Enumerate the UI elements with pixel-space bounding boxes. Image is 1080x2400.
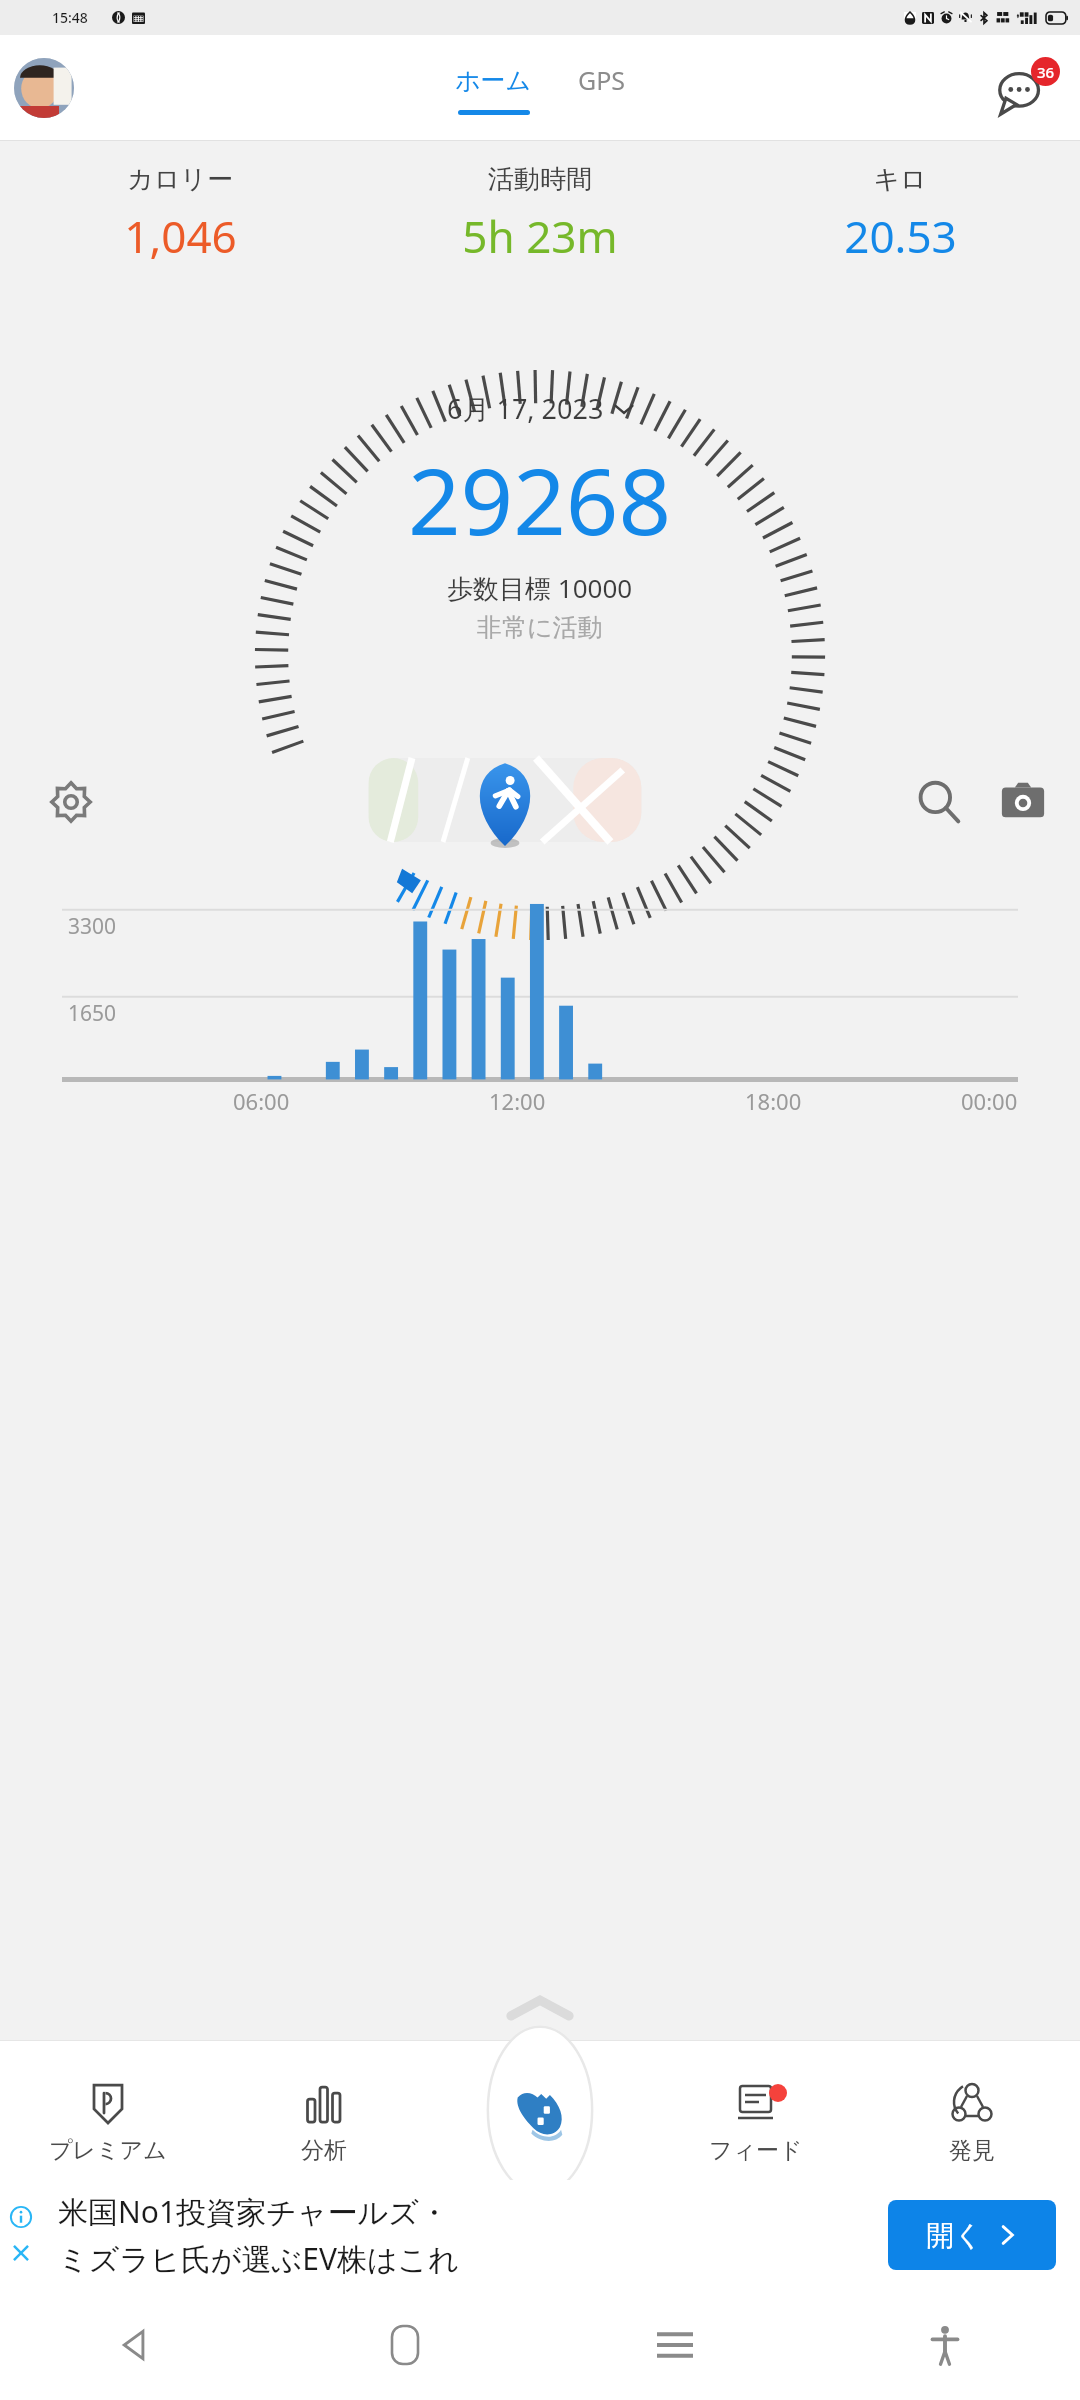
staticText: 29268 — [408, 437, 672, 562]
button[interactable]: 開く — [888, 2200, 1056, 2270]
button[interactable]: Search — [910, 773, 968, 831]
button[interactable]: 6月 17, 2023 — [447, 390, 634, 427]
staticText: 非常に活動 — [477, 612, 603, 643]
button[interactable]: 発見 — [864, 2056, 1080, 2165]
staticText: 5h 23m — [462, 206, 618, 266]
staticText: 06:00 — [233, 1086, 290, 1116]
button[interactable]: Home — [370, 2310, 440, 2380]
button[interactable]: Back — [100, 2310, 170, 2380]
staticText: GPS — [578, 63, 626, 97]
staticText: 12:00 — [489, 1086, 546, 1116]
button[interactable]: カロリー — [0, 163, 360, 266]
staticText: ミズラヒ氏が選ぶEV株はこれ — [58, 2238, 460, 2279]
staticText: 36 — [1037, 62, 1055, 82]
staticText: 活動時間 — [488, 163, 592, 196]
button[interactable]: GPS — [570, 63, 634, 116]
staticText: フィード — [709, 2136, 803, 2165]
staticText: 分析 — [301, 2136, 347, 2165]
button[interactable]: Profile — [14, 58, 74, 118]
staticText: 18:00 — [745, 1086, 802, 1116]
button[interactable]: 米国No1投資家チャールズ・ — [0, 2180, 1080, 2290]
button[interactable]: Settings — [42, 773, 100, 831]
staticText: 発見 — [949, 2136, 995, 2165]
button[interactable]: Messages — [998, 57, 1060, 119]
staticText: 歩数目標 10000 — [447, 570, 633, 606]
staticText: 15:48 — [52, 8, 88, 27]
button[interactable]: 活動時間 — [360, 163, 720, 266]
button[interactable]: Accessibility — [910, 2310, 980, 2380]
button[interactable]: キロ — [720, 163, 1080, 266]
staticText: キロ — [873, 163, 927, 196]
staticText: ホーム — [455, 65, 532, 96]
button[interactable]: Recents — [640, 2310, 710, 2380]
staticText: 1650 — [68, 999, 117, 1028]
button[interactable]: Steps — [474, 2044, 606, 2176]
button[interactable]: プレミアム — [0, 2056, 216, 2165]
staticText: 00:00 — [961, 1086, 1018, 1116]
button[interactable]: Camera — [994, 773, 1052, 831]
staticText: カロリー — [127, 163, 233, 196]
button[interactable]: フィード — [648, 2056, 864, 2165]
staticText: 開く — [926, 2218, 983, 2253]
staticText: 1,046 — [124, 206, 237, 266]
button[interactable]: ホーム — [447, 65, 540, 115]
button[interactable]: 分析 — [216, 2056, 432, 2165]
staticText: プレミアム — [49, 2136, 167, 2165]
staticText: 20.53 — [844, 206, 957, 266]
staticText: 米国No1投資家チャールズ・ — [58, 2191, 449, 2232]
button[interactable]: Map route — [350, 752, 660, 852]
staticText: 3300 — [68, 912, 117, 941]
staticText: 6月 17, 2023 — [447, 390, 604, 427]
